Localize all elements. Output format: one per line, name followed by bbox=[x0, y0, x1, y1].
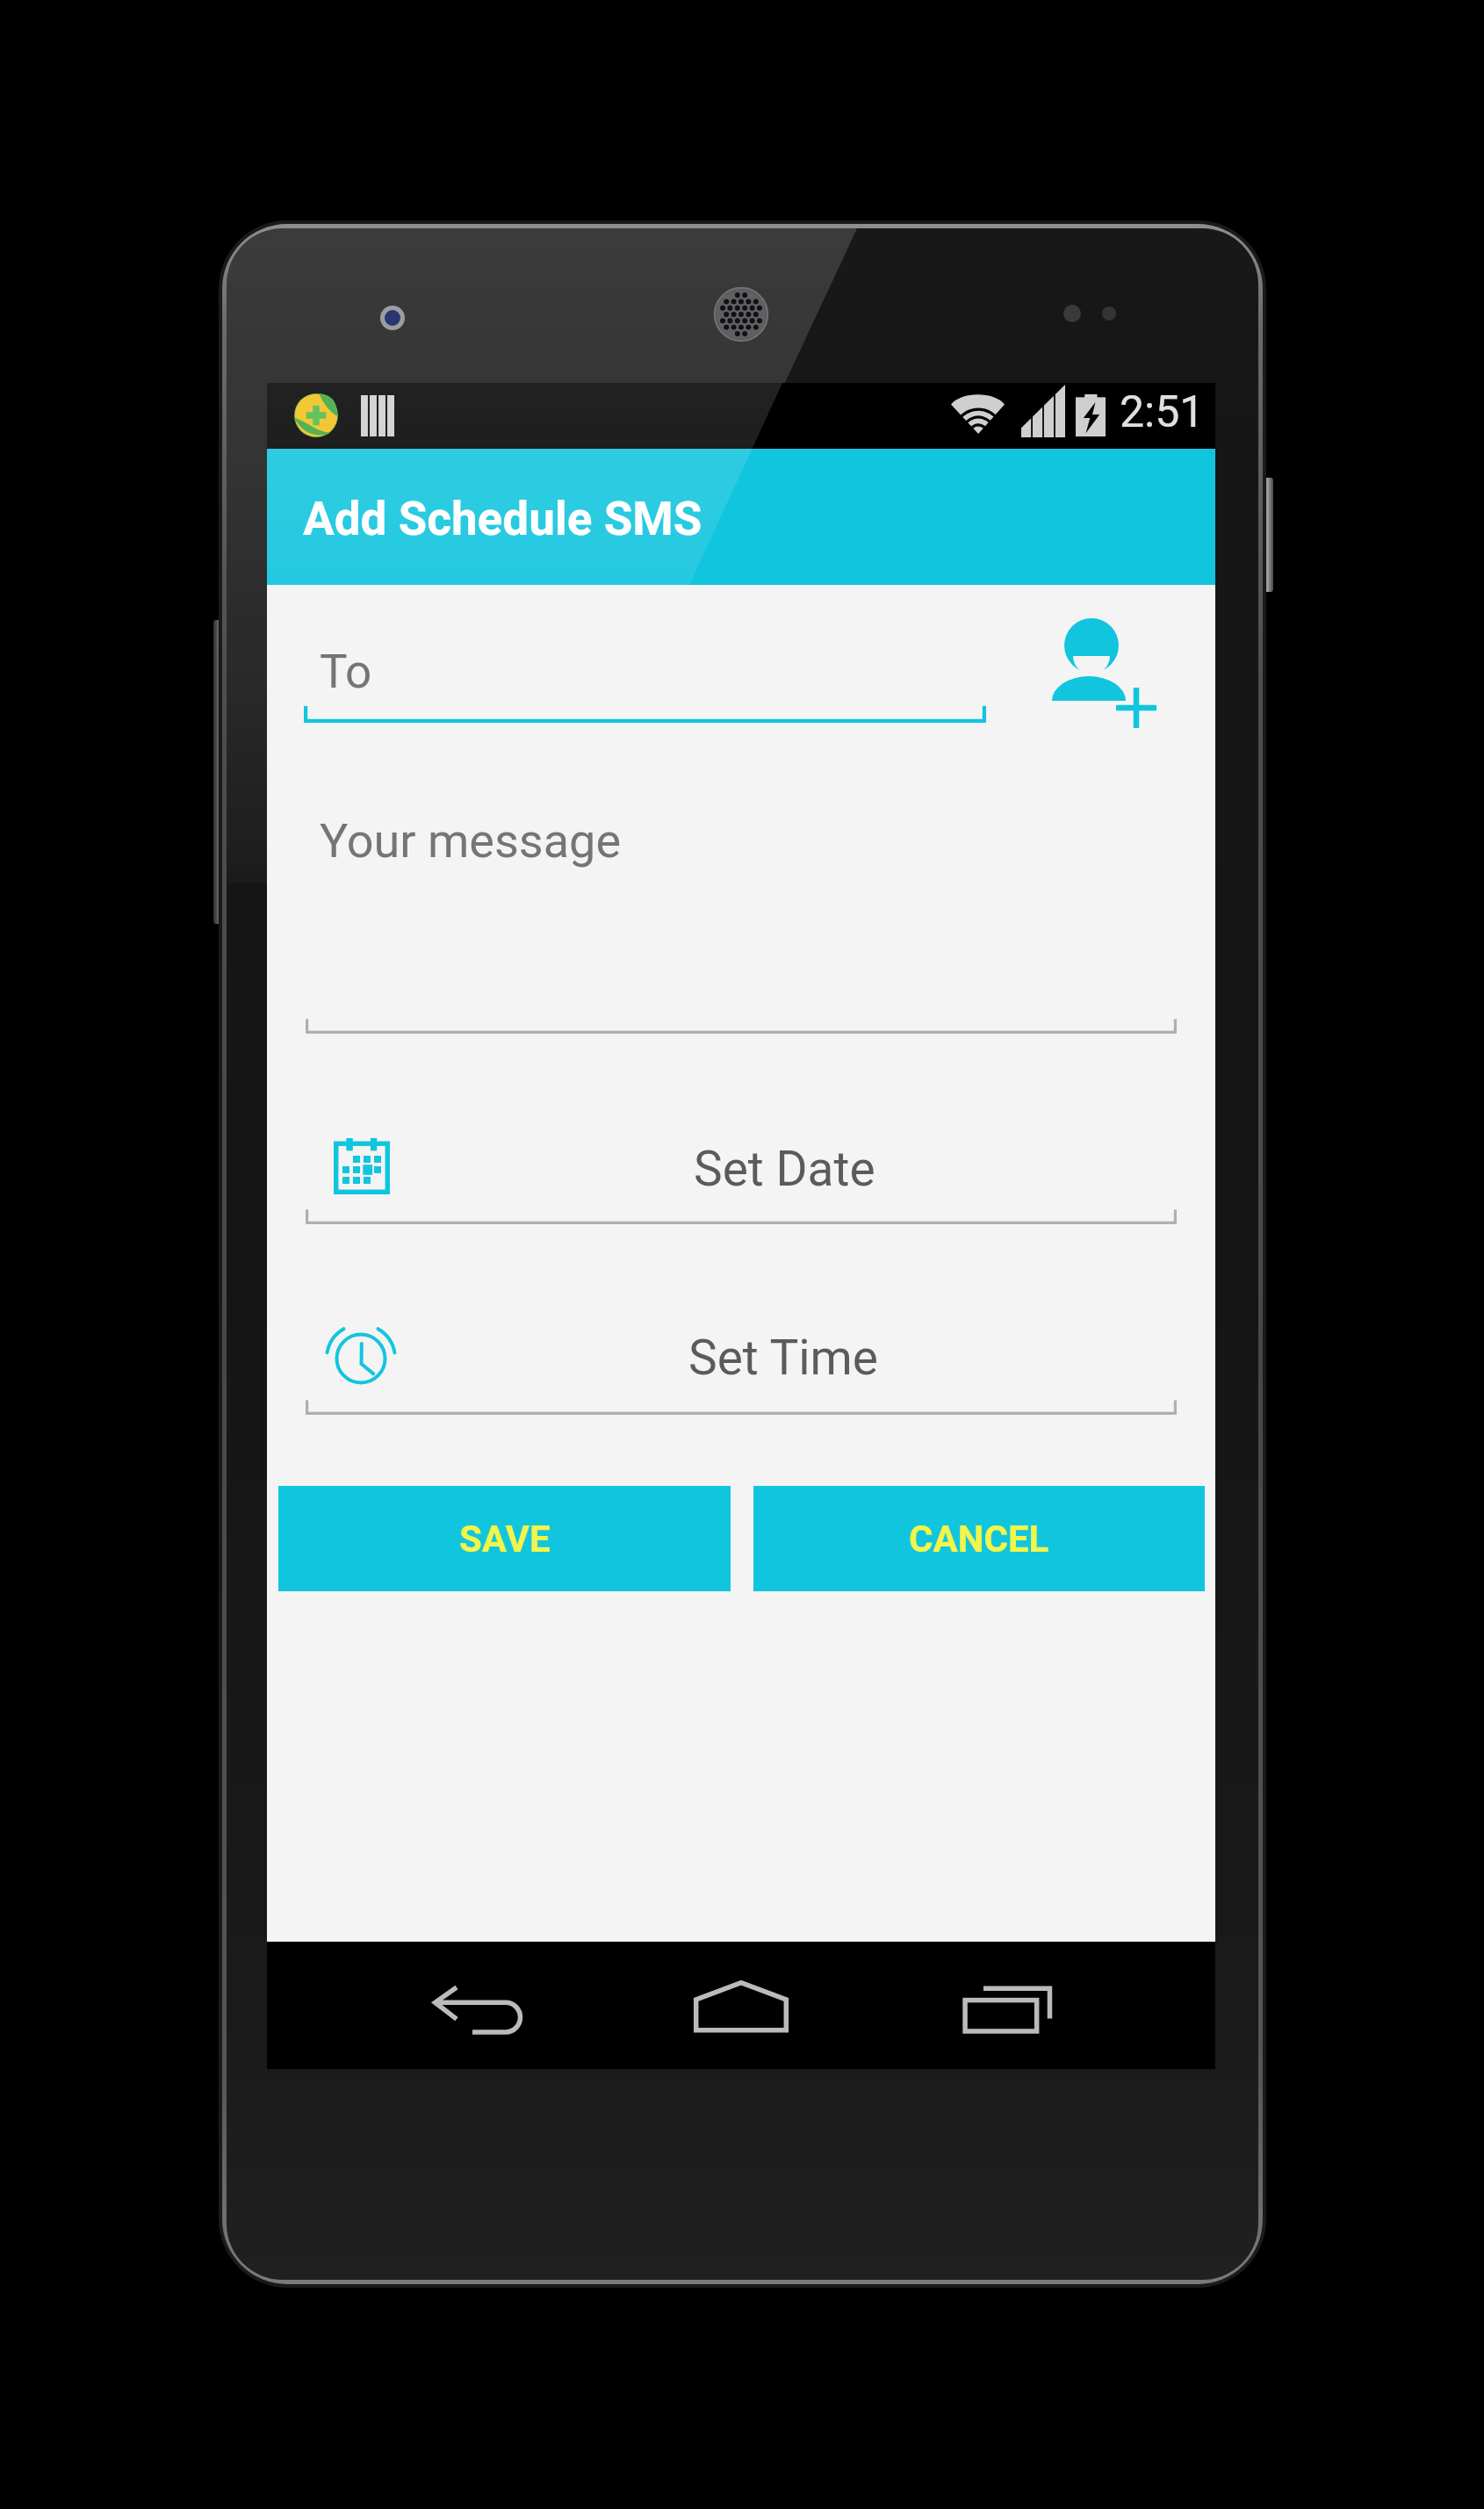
button[interactable]: Back bbox=[381, 1950, 574, 2069]
staticText: To bbox=[320, 645, 372, 699]
staticText: Your message bbox=[320, 813, 622, 869]
staticText: SAVE bbox=[459, 1518, 551, 1561]
button[interactable]: Home bbox=[645, 1950, 838, 2069]
staticText: Set Date bbox=[694, 1141, 875, 1197]
button[interactable]: Set Time bbox=[267, 1314, 1215, 1415]
button[interactable]: Recent apps bbox=[912, 1950, 1106, 2069]
button[interactable]: Set Date bbox=[267, 1125, 1215, 1226]
button[interactable]: Add contact bbox=[1027, 588, 1185, 746]
button[interactable]: CANCEL bbox=[753, 1486, 1205, 1591]
staticText: Add Schedule SMS bbox=[303, 492, 702, 546]
button[interactable]: SAVE bbox=[278, 1486, 731, 1591]
staticText: 2:51 bbox=[1120, 386, 1205, 438]
staticText: Set Time bbox=[688, 1330, 878, 1386]
staticText: CANCEL bbox=[909, 1518, 1049, 1561]
